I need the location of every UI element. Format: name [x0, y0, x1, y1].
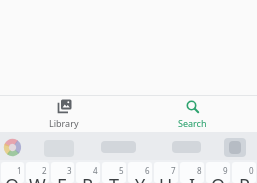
staticText: 4: [93, 165, 98, 176]
staticText: 2: [42, 165, 47, 176]
button[interactable]: 6: [128, 162, 152, 183]
button[interactable]: Library: [0, 96, 128, 132]
staticText: O: [211, 173, 226, 183]
button[interactable]: 4: [76, 162, 100, 183]
staticText: Y: [135, 173, 146, 183]
staticText: 5: [119, 165, 124, 176]
staticText: R: [82, 173, 94, 183]
staticText: W: [29, 173, 46, 183]
button[interactable]: 0: [232, 162, 256, 183]
staticText: U: [159, 173, 173, 183]
staticText: I: [189, 173, 196, 183]
staticText: 1: [17, 165, 22, 176]
button[interactable]: 9: [206, 162, 230, 183]
staticText: T: [109, 173, 120, 183]
staticText: 3: [67, 165, 72, 176]
staticText: Library: [49, 117, 79, 129]
button[interactable]: 2: [26, 162, 49, 183]
staticText: 0: [249, 165, 254, 176]
staticText: Q: [5, 173, 20, 183]
staticText: 6: [145, 165, 150, 176]
staticText: Search: [178, 117, 207, 129]
button[interactable]: Search: [128, 96, 257, 132]
button[interactable]: 3: [51, 162, 74, 183]
button[interactable]: 5: [102, 162, 126, 183]
staticText: P: [239, 173, 250, 183]
staticText: E: [57, 173, 68, 183]
button[interactable]: 8: [180, 162, 204, 183]
button[interactable]: 7: [154, 162, 178, 183]
staticText: 7: [171, 165, 176, 176]
staticText: 8: [197, 165, 202, 176]
button[interactable]: 1: [1, 162, 24, 183]
staticText: 9: [223, 165, 228, 176]
